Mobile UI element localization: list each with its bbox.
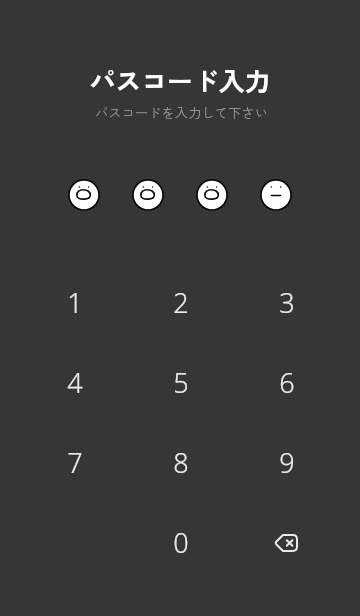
- button[interactable]: 7: [30, 420, 118, 500]
- button[interactable]: 1: [30, 260, 118, 340]
- staticText: 0: [173, 524, 189, 561]
- staticText: 7: [67, 444, 83, 481]
- staticText: 8: [173, 444, 189, 481]
- staticText: パスコード入力: [89, 61, 271, 99]
- staticText: 9: [279, 444, 295, 481]
- button[interactable]: Backspace: [242, 500, 330, 580]
- button[interactable]: 0: [136, 500, 224, 580]
- staticText: パスコードを入力して下さい: [95, 103, 268, 122]
- staticText: 6: [279, 364, 295, 401]
- button[interactable]: 8: [136, 420, 224, 500]
- button[interactable]: 4: [30, 340, 118, 420]
- staticText: 1: [67, 284, 83, 321]
- staticText: 4: [67, 364, 83, 401]
- staticText: 3: [279, 284, 295, 321]
- staticText: 2: [173, 284, 189, 321]
- staticText: 5: [173, 364, 189, 401]
- button[interactable]: 9: [242, 420, 330, 500]
- button[interactable]: 5: [136, 340, 224, 420]
- button[interactable]: 2: [136, 260, 224, 340]
- button[interactable]: 3: [242, 260, 330, 340]
- button[interactable]: 6: [242, 340, 330, 420]
